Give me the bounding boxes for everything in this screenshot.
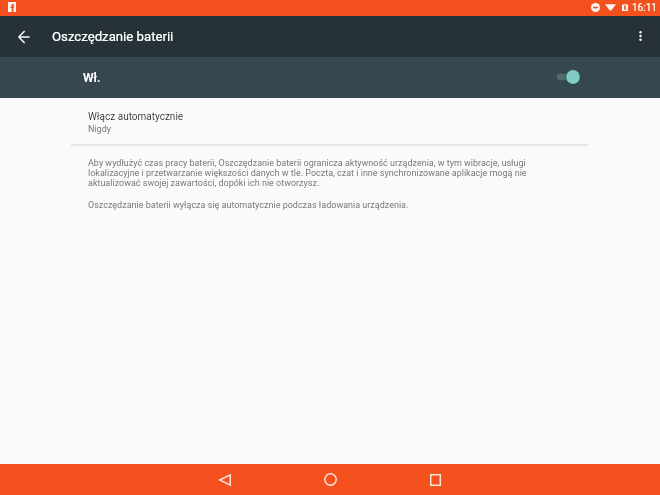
staticText: Aby wydłużyć czas pracy baterii, Oszczęd…: [88, 158, 548, 188]
button[interactable]: Home: [310, 464, 350, 495]
staticText: Włącz automatycznie: [88, 111, 184, 123]
button[interactable]: Wł.: [0, 57, 660, 98]
button[interactable]: Battery saver on/off switch: [545, 63, 585, 91]
staticText: Oszczędzanie baterii: [52, 29, 174, 44]
button[interactable]: Recent apps: [415, 464, 455, 495]
button[interactable]: Back: [205, 464, 245, 495]
staticText: 16:11: [632, 2, 657, 14]
staticText: Nigdy: [88, 124, 111, 135]
button[interactable]: Navigate up: [9, 22, 38, 51]
button[interactable]: More options: [626, 23, 654, 51]
button[interactable]: Włącz automatycznie: [0, 99, 660, 143]
staticText: Wł.: [83, 71, 101, 85]
staticText: Oszczędzanie baterii wyłącza się automat…: [88, 200, 548, 211]
